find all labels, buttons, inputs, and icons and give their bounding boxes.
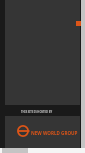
- staticText: THIS SITE IS HOSTED BY: [21, 110, 53, 114]
- staticText: NEW WORLD GROUP: [31, 130, 78, 136]
- button[interactable]: NEW WORLD GROUP: [17, 125, 78, 137]
